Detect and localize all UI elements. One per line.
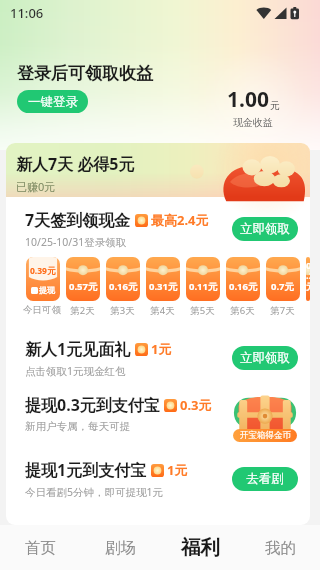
staticText: 立即领取 [240, 350, 290, 366]
staticText: 第4天 [150, 304, 175, 315]
staticText: 0.57元 [69, 280, 98, 293]
staticText: 一键登录 [28, 94, 78, 110]
button[interactable]: 0.2元 [306, 257, 310, 301]
button[interactable]: 一键登录 [17, 90, 88, 113]
staticText: 0.39元 [30, 265, 56, 277]
button[interactable]: 我的 [240, 525, 320, 570]
button[interactable]: 剧场 [80, 525, 160, 570]
button[interactable]: 去看剧 [232, 467, 298, 491]
staticText: 0.3元 [180, 396, 212, 414]
staticText: 0.2元 [306, 259, 310, 293]
staticText: 点击领取1元现金红包 [25, 364, 126, 378]
staticText: 新人1元见面礼 [25, 338, 131, 360]
staticText: 11:06 [10, 4, 44, 22]
staticText: 最高2.4元 [151, 211, 209, 229]
button[interactable]: 0.57元 [66, 257, 100, 301]
staticText: 福利 [181, 535, 220, 560]
button[interactable]: 福利 [160, 525, 240, 570]
staticText: 登录后可领取收益 [17, 63, 153, 84]
staticText: 今日可领 [23, 304, 61, 315]
staticText: 第5天 [190, 304, 215, 315]
button[interactable]: 开宝箱得金币 [232, 388, 298, 442]
staticText: 第7天 [270, 304, 295, 315]
staticText: 新人7天 必得5元 [16, 153, 135, 175]
staticText: 0.16元 [229, 280, 258, 293]
button[interactable]: 立即领取 [232, 217, 298, 241]
staticText: 开宝箱得金币 [240, 430, 291, 441]
staticText: 已赚0元 [16, 179, 56, 194]
button[interactable]: 0.16元 [106, 257, 140, 301]
staticText: 立即领取 [240, 221, 290, 237]
staticText: 提现0.3元到支付宝 [25, 394, 160, 416]
staticText: 元 [270, 99, 280, 112]
staticText: 剧场 [105, 538, 136, 558]
staticText: 7天签到领现金 [25, 209, 131, 231]
staticText: 1元 [167, 461, 188, 479]
staticText: 第3天 [110, 304, 135, 315]
staticText: 提现 [39, 285, 55, 295]
button[interactable]: 立即领取 [232, 346, 298, 370]
staticText: 0.11元 [189, 280, 218, 293]
staticText: 去看剧 [246, 471, 284, 487]
staticText: 我的 [265, 538, 296, 558]
staticText: 新用户专属，每天可提 [25, 420, 130, 433]
button[interactable]: 首页 [0, 525, 80, 570]
staticText: 1元 [151, 340, 172, 358]
staticText: 第6天 [230, 304, 255, 315]
button[interactable]: 0.11元 [186, 257, 220, 301]
staticText: 提现1元到支付宝 [25, 459, 147, 481]
staticText: 第2天 [70, 304, 95, 315]
staticText: 今日看剧5分钟，即可提现1元 [25, 485, 164, 499]
button[interactable]: 0.7元 [266, 257, 300, 301]
staticText: 0.7元 [271, 280, 295, 293]
staticText: 首页 [25, 538, 56, 558]
staticText: 0.16元 [109, 280, 138, 293]
staticText: 0.31元 [149, 280, 178, 293]
staticText: 10/25-10/31登录领取 [25, 235, 127, 249]
button[interactable]: 0.31元 [146, 257, 180, 301]
button[interactable]: 0.16元 [226, 257, 260, 301]
button[interactable]: 0.39元 [26, 257, 60, 301]
staticText: 1.00 [227, 85, 269, 114]
staticText: 现金收益 [233, 116, 273, 129]
